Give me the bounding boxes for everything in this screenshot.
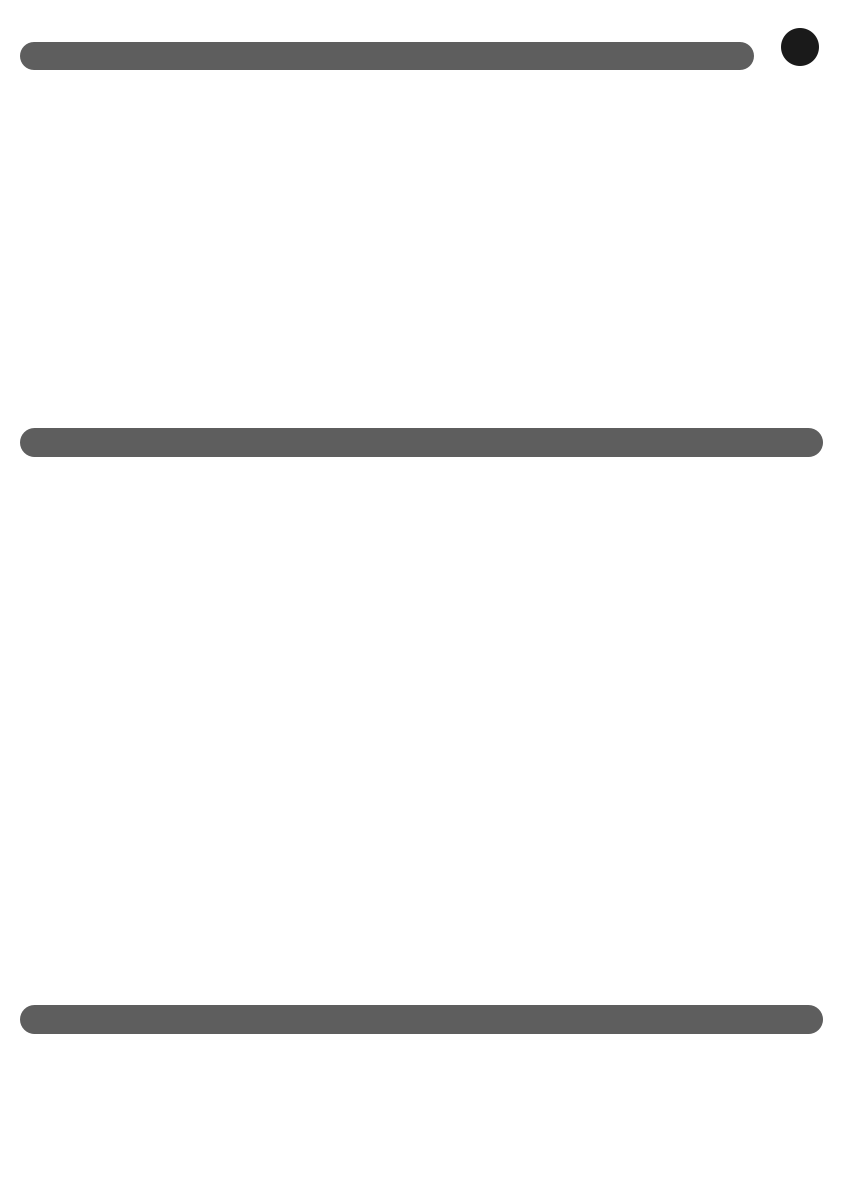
button[interactable]: Account bbox=[781, 28, 819, 66]
button[interactable]: Loading content bbox=[20, 428, 823, 457]
button[interactable]: Loading content bbox=[20, 1005, 823, 1034]
